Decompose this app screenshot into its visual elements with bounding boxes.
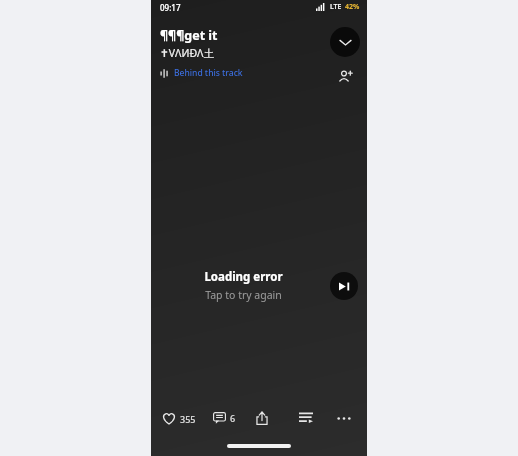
staticText: Tap to try again	[205, 288, 282, 302]
staticText: ✝VΛИÐΛ土	[160, 46, 214, 60]
button[interactable]: Skip to next track	[330, 272, 358, 300]
staticText: LTE	[330, 2, 342, 12]
button[interactable]: More options	[333, 407, 355, 429]
button[interactable]: Follow artist	[332, 63, 358, 89]
button[interactable]: 6	[210, 409, 239, 427]
staticText: 42%	[345, 2, 360, 12]
button[interactable]: Behind this track	[160, 67, 243, 79]
staticText: Loading error	[204, 269, 283, 285]
staticText: 6	[230, 412, 236, 424]
button[interactable]: Collapse player	[330, 27, 360, 57]
button[interactable]: Share	[251, 407, 273, 429]
staticText: Behind this track	[174, 67, 243, 79]
staticText: ¶¶¶get it	[160, 27, 218, 44]
staticText: 355	[180, 413, 196, 425]
button[interactable]: Add to playlist	[295, 407, 317, 429]
staticText: 09:17	[160, 2, 181, 13]
button[interactable]: 355	[159, 409, 199, 428]
button[interactable]: Loading error	[160, 269, 326, 302]
